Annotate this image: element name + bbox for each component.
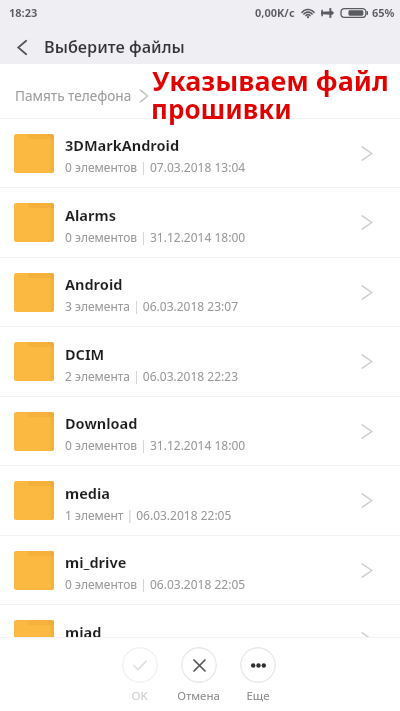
staticText: прошивки bbox=[151, 91, 292, 126]
button[interactable]: Еще bbox=[228, 647, 287, 704]
staticText: Отмена bbox=[177, 688, 220, 704]
staticText: 65% bbox=[372, 5, 395, 20]
staticText: Еще bbox=[246, 688, 270, 704]
staticText: 0 элементов | 06.03.2018 22:05 bbox=[65, 646, 246, 662]
staticText: Android bbox=[65, 274, 123, 294]
button[interactable]: Назад bbox=[4, 29, 40, 65]
staticText: 3 элемента | 06.03.2018 23:07 bbox=[65, 298, 239, 314]
button[interactable]: Alarms bbox=[0, 188, 400, 257]
staticText: Download bbox=[65, 413, 138, 433]
staticText: miad bbox=[65, 622, 102, 642]
button[interactable]: miad bbox=[0, 605, 400, 674]
staticText: 0 элементов | 06.03.2018 22:05 bbox=[65, 576, 246, 592]
staticText: mi_drive bbox=[65, 552, 127, 572]
staticText: Alarms bbox=[65, 205, 116, 225]
staticText: OK bbox=[131, 688, 148, 704]
button[interactable]: Download bbox=[0, 397, 400, 465]
staticText: 0 элементов | 31.12.2014 18:00 bbox=[65, 437, 246, 453]
staticText: 1 элемент | 06.03.2018 22:05 bbox=[65, 507, 232, 523]
button[interactable]: OK bbox=[110, 647, 169, 704]
staticText: 3DMarkAndroid bbox=[65, 135, 180, 155]
staticText: media bbox=[65, 483, 110, 503]
staticText: 0 элементов | 31.12.2014 18:00 bbox=[65, 229, 246, 245]
staticText: 0,00K/c bbox=[255, 5, 295, 20]
button[interactable]: 3DMarkAndroid bbox=[0, 119, 400, 187]
staticText: Выберите файлы bbox=[44, 36, 185, 58]
button[interactable]: mi_drive bbox=[0, 536, 400, 604]
staticText: 18:23 bbox=[9, 5, 38, 20]
button[interactable]: Android bbox=[0, 258, 400, 326]
button[interactable]: DCIM bbox=[0, 327, 400, 396]
staticText: 0 элементов | 07.03.2018 13:04 bbox=[65, 159, 246, 175]
staticText: 2 элемента | 06.03.2018 22:23 bbox=[65, 368, 239, 384]
button[interactable]: media bbox=[0, 466, 400, 535]
staticText: Память телефона bbox=[15, 86, 132, 105]
button[interactable]: Память телефона bbox=[0, 82, 159, 101]
staticText: DCIM bbox=[65, 344, 105, 364]
button[interactable]: Отмена bbox=[169, 647, 228, 704]
staticText: Указываем файл bbox=[152, 62, 389, 99]
